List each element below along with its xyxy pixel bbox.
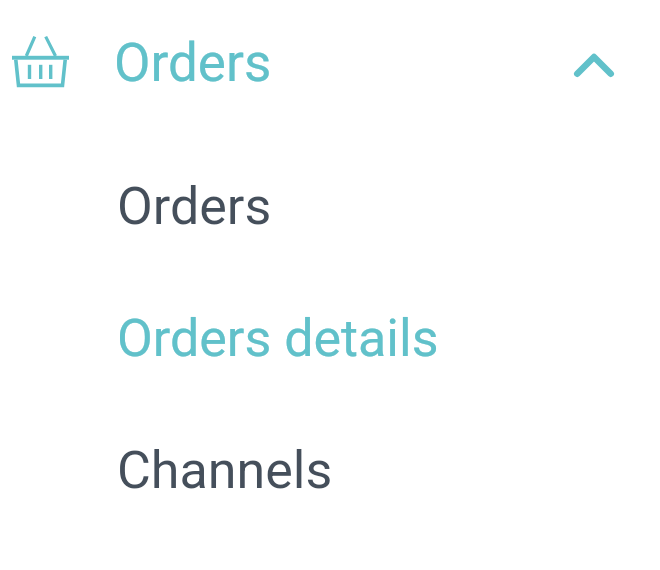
button[interactable]: Collapse Orders section — [563, 34, 625, 96]
staticText: Orders — [114, 32, 272, 94]
button[interactable]: Orders — [0, 140, 660, 272]
button[interactable]: Orders — [0, 0, 660, 122]
staticText: Orders — [117, 176, 272, 237]
button[interactable]: Orders details — [0, 272, 660, 404]
staticText: Channels — [117, 440, 333, 501]
staticText: Orders details — [117, 308, 439, 369]
button[interactable]: Channels — [0, 404, 660, 536]
